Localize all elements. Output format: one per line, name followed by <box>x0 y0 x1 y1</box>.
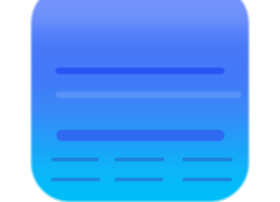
button[interactable]: Notes app icon <box>0 0 280 202</box>
